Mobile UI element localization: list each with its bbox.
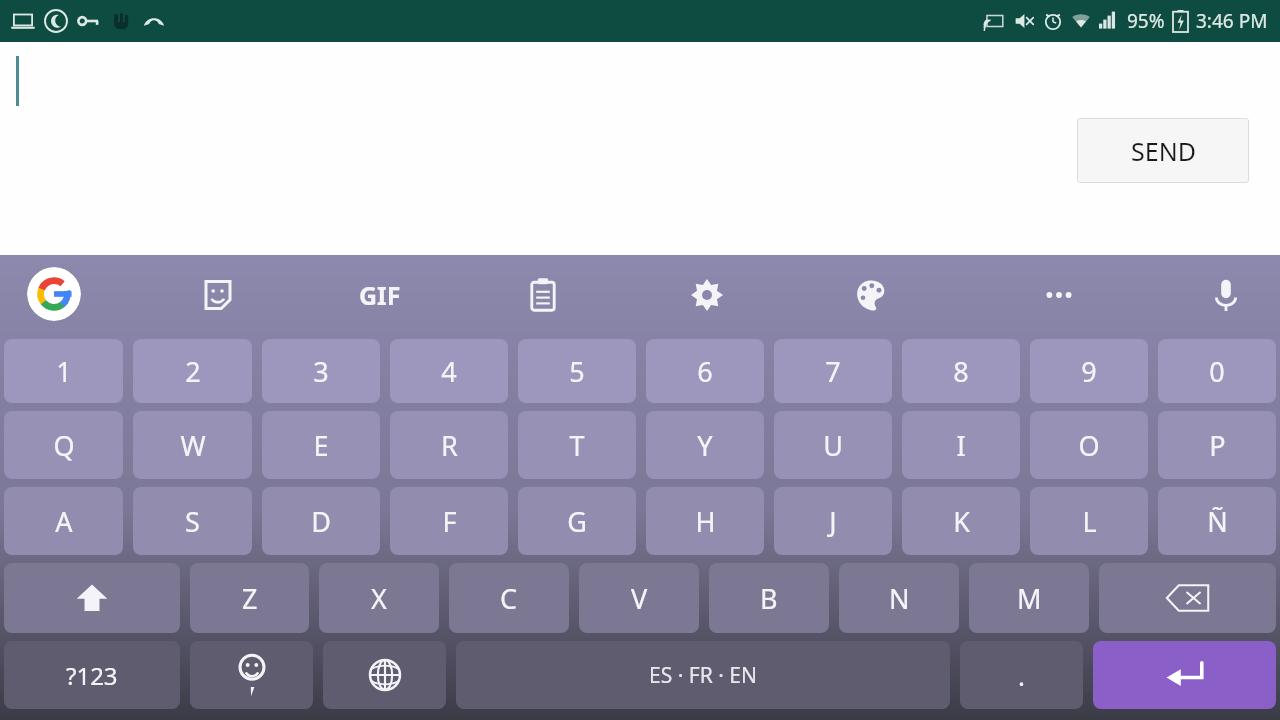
staticText: Y	[697, 427, 713, 464]
staticText: ?123	[66, 659, 118, 692]
staticText: 0	[1209, 353, 1225, 390]
staticText: 7	[825, 353, 841, 390]
staticText: Ñ	[1207, 503, 1228, 540]
button[interactable]: ES · FR · EN	[456, 641, 950, 709]
staticText: N	[889, 580, 910, 617]
button[interactable]: Emoji	[190, 641, 313, 709]
staticText: E	[313, 427, 329, 464]
staticText: J	[829, 503, 837, 540]
button[interactable]: A	[4, 487, 123, 555]
button[interactable]: 3	[262, 339, 380, 403]
button[interactable]: Y	[646, 411, 764, 479]
staticText: O	[1078, 427, 1100, 464]
button[interactable]: U	[774, 411, 892, 479]
button[interactable]: Clipboard	[517, 269, 569, 321]
staticText: P	[1209, 427, 1226, 464]
button[interactable]: Shift	[4, 563, 180, 633]
staticText: GIF	[359, 278, 401, 312]
button[interactable]: Google search	[27, 267, 81, 321]
staticText: M	[1017, 580, 1042, 617]
staticText: 6	[697, 353, 713, 390]
button[interactable]: Settings	[681, 269, 733, 321]
staticText: D	[311, 503, 331, 540]
button[interactable]: Themes	[845, 269, 897, 321]
staticText: I	[956, 427, 966, 464]
button[interactable]: 0	[1158, 339, 1276, 403]
button[interactable]: 7	[774, 339, 892, 403]
staticText: 9	[1081, 353, 1097, 390]
button[interactable]: T	[518, 411, 636, 479]
button[interactable]: ?123	[4, 641, 180, 709]
button[interactable]: B	[709, 563, 829, 633]
staticText: Z	[242, 580, 258, 617]
button[interactable]: D	[262, 487, 380, 555]
button[interactable]: I	[902, 411, 1020, 479]
button[interactable]: V	[579, 563, 699, 633]
staticText: Q	[53, 427, 75, 464]
button[interactable]: 5	[518, 339, 636, 403]
staticText: A	[55, 503, 73, 540]
staticText: SEND	[1131, 134, 1196, 168]
button[interactable]: Ñ	[1158, 487, 1276, 555]
staticText: S	[185, 503, 200, 540]
button[interactable]: Stickers	[192, 269, 244, 321]
staticText: 2	[185, 353, 201, 390]
button[interactable]: Change language	[323, 641, 446, 709]
button[interactable]: Q	[4, 411, 123, 479]
staticText: 4	[441, 353, 457, 390]
button[interactable]: 4	[390, 339, 508, 403]
staticText: V	[631, 580, 648, 617]
staticText: .	[1018, 658, 1025, 693]
button[interactable]: Voice input	[1200, 269, 1252, 321]
button[interactable]: G	[518, 487, 636, 555]
staticText: W	[180, 427, 206, 464]
button[interactable]: Backspace	[1099, 563, 1276, 633]
button[interactable]: .	[960, 641, 1083, 709]
button[interactable]: S	[133, 487, 252, 555]
staticText: K	[953, 503, 970, 540]
button[interactable]: H	[646, 487, 764, 555]
button[interactable]: 1	[4, 339, 123, 403]
staticText: G	[567, 503, 587, 540]
button[interactable]: W	[133, 411, 252, 479]
staticText: H	[695, 503, 716, 540]
button[interactable]: 8	[902, 339, 1020, 403]
button[interactable]: C	[449, 563, 569, 633]
button[interactable]: GIF	[342, 275, 418, 315]
button[interactable]: X	[319, 563, 439, 633]
staticText: C	[500, 580, 518, 617]
button[interactable]: R	[390, 411, 508, 479]
button[interactable]: J	[774, 487, 892, 555]
staticText: X	[371, 580, 387, 617]
button[interactable]: E	[262, 411, 380, 479]
staticText: T	[569, 427, 585, 464]
button[interactable]: N	[839, 563, 959, 633]
button[interactable]: SEND	[1077, 118, 1249, 183]
staticText: ES · FR · EN	[649, 661, 757, 690]
button[interactable]: 9	[1030, 339, 1148, 403]
button[interactable]: P	[1158, 411, 1276, 479]
button[interactable]: L	[1030, 487, 1148, 555]
button[interactable]: 2	[133, 339, 252, 403]
staticText: 1	[56, 353, 72, 390]
staticText: F	[442, 503, 457, 540]
button[interactable]: Z	[190, 563, 309, 633]
button[interactable]: M	[969, 563, 1089, 633]
button[interactable]: More options	[1033, 269, 1085, 321]
button[interactable]: 6	[646, 339, 764, 403]
staticText: U	[823, 427, 843, 464]
staticText: 95%	[1127, 8, 1165, 34]
staticText: 3	[313, 353, 329, 390]
staticText: 5	[569, 353, 585, 390]
staticText: L	[1082, 503, 1097, 540]
button[interactable]: K	[902, 487, 1020, 555]
button[interactable]: F	[390, 487, 508, 555]
staticText: R	[441, 427, 458, 464]
button[interactable]: Enter	[1093, 641, 1276, 709]
staticText: 3:46 PM	[1196, 8, 1268, 34]
staticText: 8	[953, 353, 969, 390]
staticText: B	[760, 580, 778, 617]
button[interactable]: O	[1030, 411, 1148, 479]
